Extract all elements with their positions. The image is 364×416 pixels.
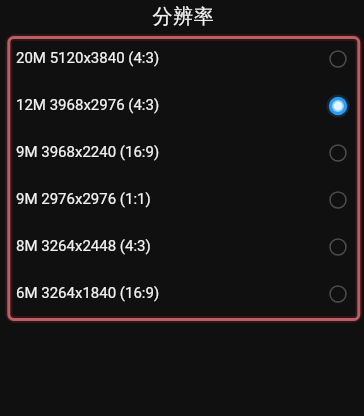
staticText: 8M 3264x2448 (4:3) — [16, 237, 151, 255]
staticText: 9M 2976x2976 (1:1) — [16, 190, 151, 208]
button[interactable]: 20M 5120x3840 (4:3) — [8, 35, 359, 82]
button[interactable]: 9M 3968x2240 (16:9) — [8, 129, 359, 176]
staticText: 12M 3968x2976 (4:3) — [16, 96, 160, 114]
staticText: 9M 3968x2240 (16:9) — [16, 143, 160, 161]
button[interactable]: 8M 3264x2448 (4:3) — [8, 223, 359, 270]
staticText: 6M 3264x1840 (16:9) — [16, 284, 160, 302]
button[interactable]: 6M 3264x1840 (16:9) — [8, 270, 359, 317]
staticText: 分辨率 — [152, 4, 215, 29]
staticText: 20M 5120x3840 (4:3) — [16, 49, 160, 67]
button[interactable]: 9M 2976x2976 (1:1) — [8, 176, 359, 223]
button[interactable]: 12M 3968x2976 (4:3) — [8, 82, 359, 129]
